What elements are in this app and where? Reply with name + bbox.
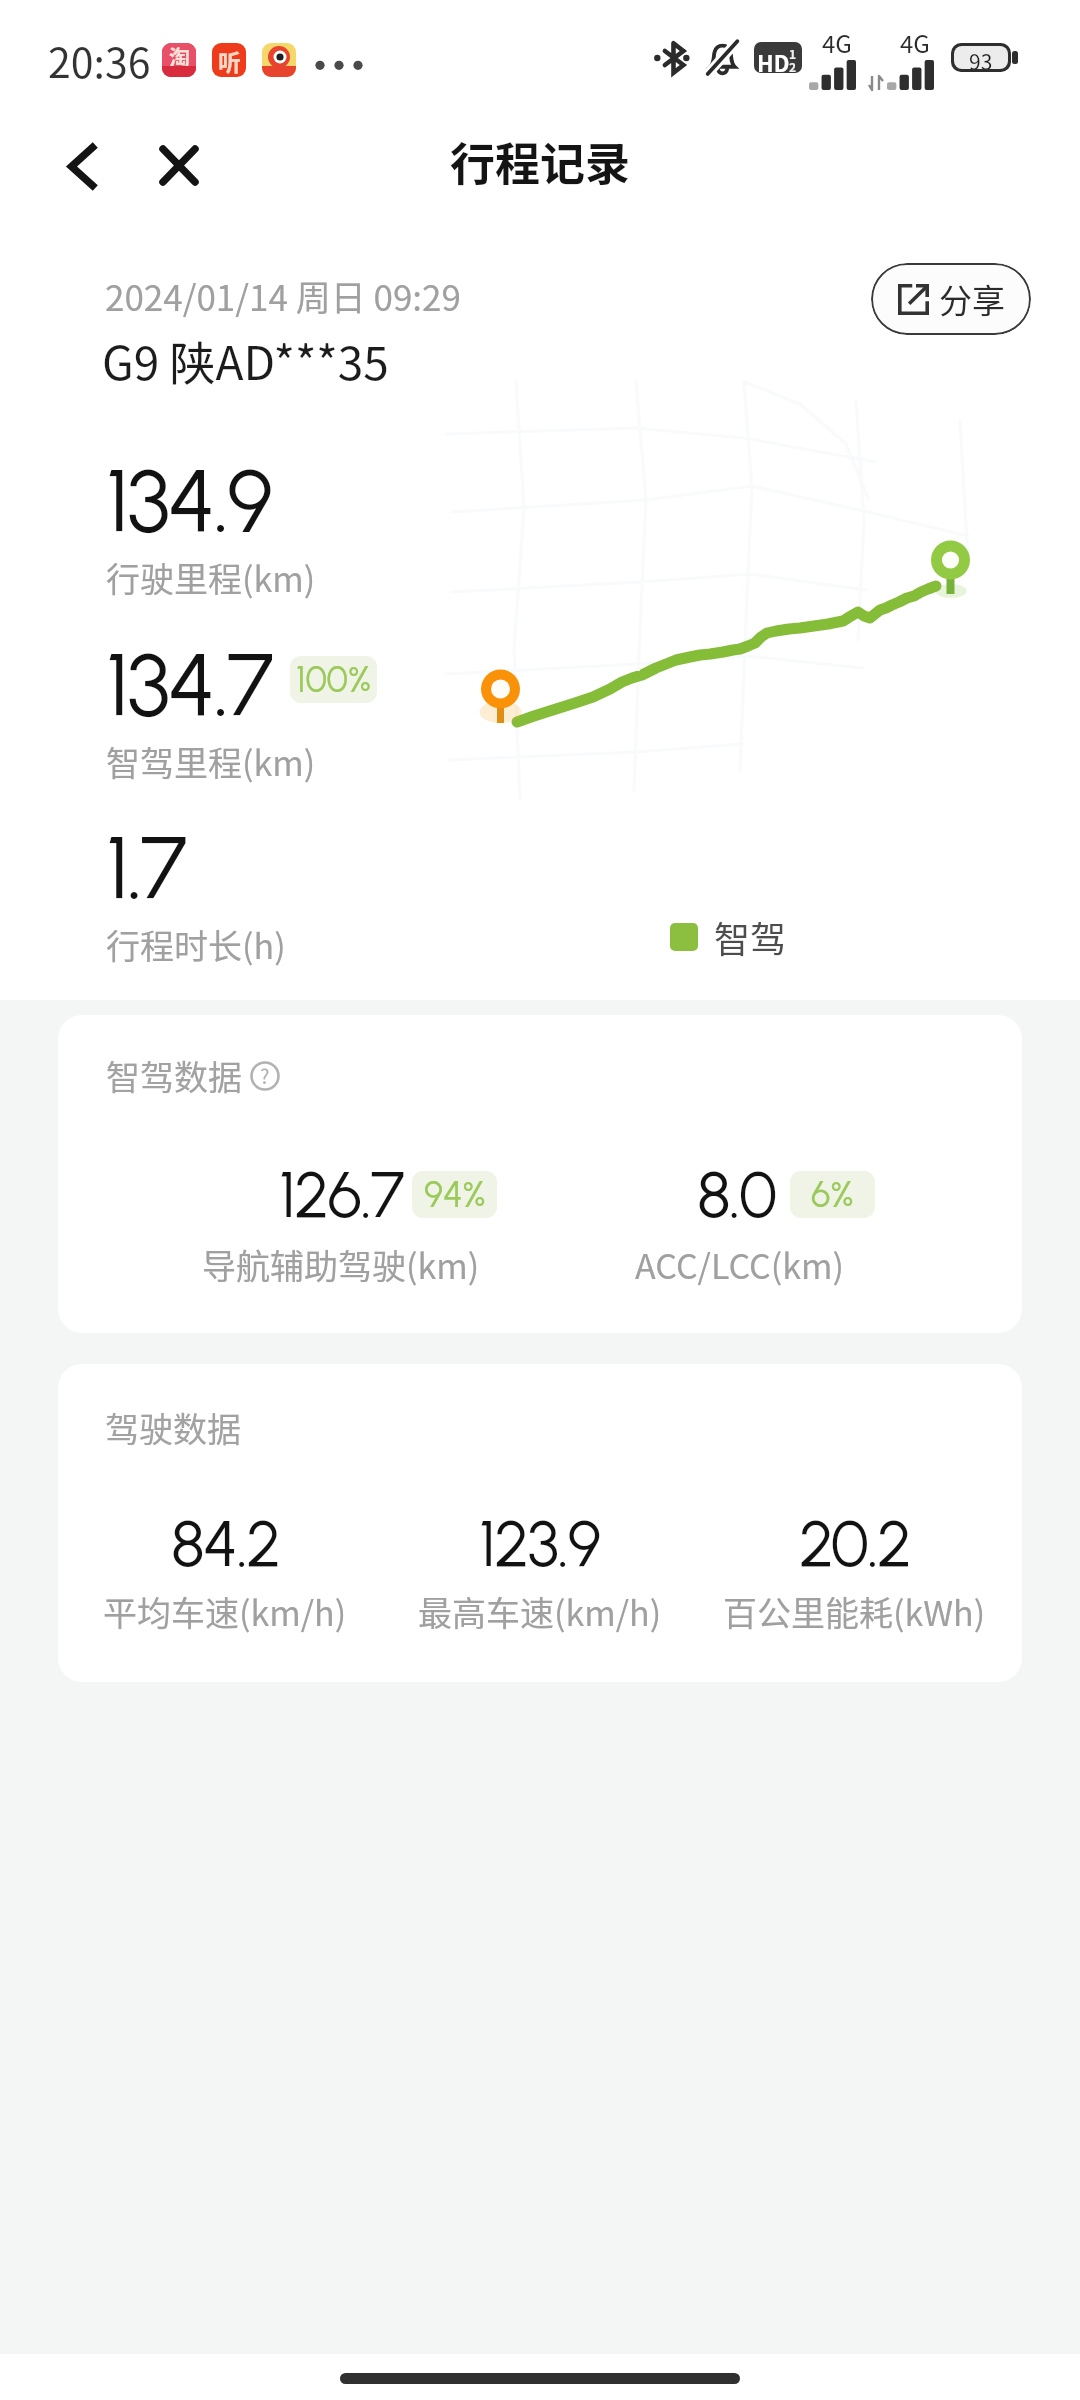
staticText: 听 bbox=[218, 44, 241, 77]
button[interactable]: 智驾数据 help bbox=[106, 1051, 280, 1100]
staticText: 1 bbox=[789, 45, 797, 62]
staticText: 驾驶数据 bbox=[105, 1403, 241, 1452]
staticText: 84.2 bbox=[171, 1505, 280, 1582]
staticText: 134.7 bbox=[106, 631, 272, 737]
staticText: 123.9 bbox=[479, 1505, 600, 1582]
staticText: ? bbox=[260, 1061, 270, 1090]
staticText: 智驾 bbox=[714, 911, 787, 963]
staticText: 分享 bbox=[939, 275, 1005, 323]
staticText: 8.0 bbox=[697, 1156, 776, 1233]
staticText: 93 bbox=[969, 46, 993, 69]
staticText: 2024/01/14 周日 09:29 bbox=[105, 270, 461, 321]
staticText: 4G bbox=[900, 25, 930, 60]
staticText: 智驾数据 bbox=[106, 1051, 242, 1100]
staticText: 126.7 bbox=[279, 1156, 404, 1233]
staticText: 淘 bbox=[169, 43, 190, 71]
staticText: 2 bbox=[789, 58, 797, 73]
staticText: 20:36 bbox=[48, 30, 151, 89]
staticText: 6% bbox=[811, 1173, 854, 1216]
staticText: 平均车速(km/h) bbox=[103, 1587, 347, 1636]
button[interactable]: 智驾数据 help bbox=[58, 1015, 1022, 1333]
staticText: 百公里能耗(kWh) bbox=[723, 1587, 986, 1636]
staticText: 行程记录 bbox=[450, 129, 631, 194]
staticText: ACC/LCC(km) bbox=[635, 1240, 844, 1289]
staticText: 行驶里程(km) bbox=[106, 553, 316, 602]
staticText: 4G bbox=[822, 25, 852, 60]
staticText: HD bbox=[757, 46, 790, 73]
staticText: 20.2 bbox=[799, 1505, 911, 1582]
button[interactable]: Close bbox=[133, 119, 225, 211]
staticText: G9 陕AD***35 bbox=[102, 327, 389, 394]
button[interactable]: 分享 bbox=[871, 263, 1031, 335]
staticText: 最高车速(km/h) bbox=[418, 1587, 662, 1636]
staticText: 1.7 bbox=[106, 814, 185, 920]
staticText: 行程时长(h) bbox=[106, 920, 286, 969]
button[interactable]: 驾驶数据 bbox=[58, 1364, 1022, 1682]
staticText: 智驾里程(km) bbox=[106, 737, 316, 786]
button[interactable]: Back bbox=[36, 120, 128, 212]
staticText: 94% bbox=[424, 1173, 486, 1216]
staticText: 导航辅助驾驶(km) bbox=[202, 1240, 480, 1289]
staticText: 100% bbox=[296, 658, 372, 701]
staticText: 134.9 bbox=[106, 447, 271, 553]
